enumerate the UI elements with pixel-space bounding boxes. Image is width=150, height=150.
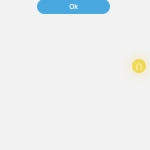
staticText: Ok <box>69 2 78 11</box>
button[interactable]: Account <box>132 59 146 73</box>
button[interactable]: Ok <box>37 0 110 14</box>
